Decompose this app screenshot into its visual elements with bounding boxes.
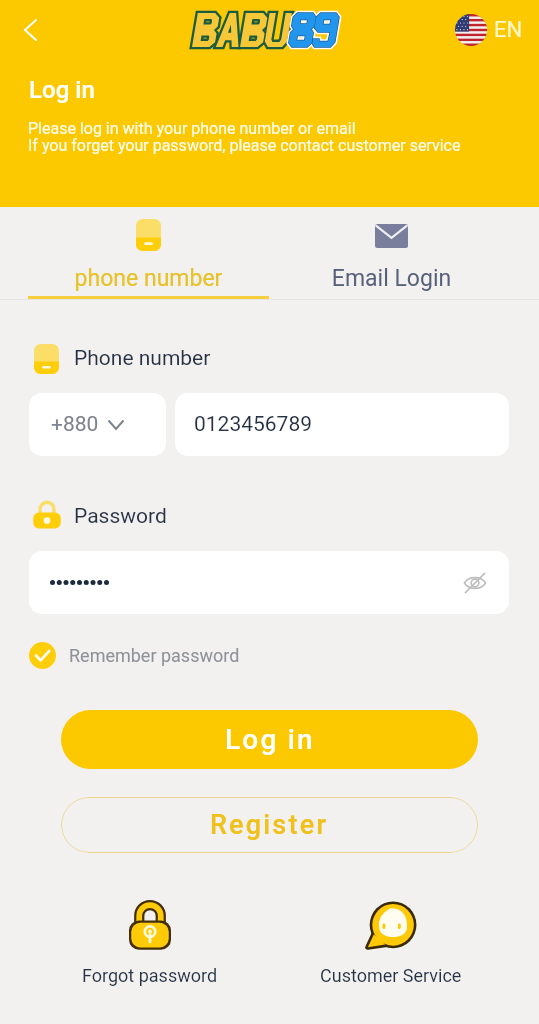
button[interactable]: 0123456789 bbox=[175, 393, 509, 456]
staticText: Log in bbox=[29, 76, 95, 104]
staticText: phone number bbox=[28, 265, 269, 292]
button[interactable]: Show password bbox=[455, 563, 495, 603]
staticText: 0123456789 bbox=[194, 412, 313, 437]
staticText: Email Login bbox=[271, 265, 512, 292]
button[interactable]: Remember password bbox=[29, 642, 240, 669]
button[interactable]: Register bbox=[61, 797, 478, 853]
staticText: Customer Service bbox=[320, 965, 462, 986]
staticText: Please log in with your phone number or … bbox=[28, 119, 356, 138]
staticText: +880 bbox=[51, 412, 99, 437]
button[interactable]: Back bbox=[7, 7, 53, 53]
button[interactable]: phone number bbox=[28, 207, 269, 299]
button[interactable]: Customer Service bbox=[320, 900, 462, 986]
button[interactable]: Show password bbox=[29, 551, 509, 614]
button[interactable]: Log in bbox=[61, 710, 478, 769]
staticText: Register bbox=[210, 809, 329, 841]
staticText: If you forget your password, please cont… bbox=[28, 136, 461, 155]
staticText: Remember password bbox=[69, 645, 240, 666]
button[interactable]: Language EN bbox=[455, 9, 523, 51]
button[interactable]: +880 bbox=[29, 393, 166, 456]
staticText: EN bbox=[494, 17, 523, 43]
staticText: Log in bbox=[225, 723, 315, 756]
staticText: Phone number bbox=[74, 346, 211, 371]
staticText: Forgot password bbox=[82, 965, 218, 986]
staticText: Password bbox=[74, 504, 167, 529]
button[interactable]: Email Login bbox=[271, 207, 512, 299]
button[interactable]: Forgot password bbox=[80, 900, 220, 986]
